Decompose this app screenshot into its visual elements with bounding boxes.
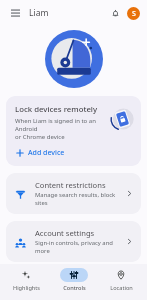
button[interactable]: Highlights xyxy=(4,267,48,293)
button[interactable]: Menu xyxy=(7,5,23,21)
button[interactable]: Account xyxy=(127,7,140,20)
staticText: Account settings xyxy=(35,228,95,238)
button[interactable]: Controls xyxy=(52,267,96,293)
button[interactable]: Notifications xyxy=(107,5,123,21)
staticText: Liam xyxy=(29,7,49,19)
button[interactable]: Location xyxy=(99,267,143,293)
button[interactable]: Content restrictions xyxy=(6,173,141,214)
staticText: Content restrictions xyxy=(35,180,106,190)
staticText: or Chrome device xyxy=(15,133,65,141)
staticText: When Liam is signed in to an Android xyxy=(15,117,105,133)
button[interactable]: Lock devices remotely xyxy=(6,96,141,166)
staticText: Controls xyxy=(63,284,86,292)
staticText: Sign-in controls, privacy and more xyxy=(35,239,122,255)
staticText: Location xyxy=(110,284,133,292)
staticText: Add device xyxy=(28,148,65,158)
staticText: Highlights xyxy=(13,284,40,292)
button[interactable]: Account settings xyxy=(6,221,141,262)
button[interactable]: Add device xyxy=(15,147,66,159)
staticText: Manage search results, block sites xyxy=(35,191,122,207)
staticText: Lock devices remotely xyxy=(15,104,98,115)
staticText: S xyxy=(132,9,136,19)
